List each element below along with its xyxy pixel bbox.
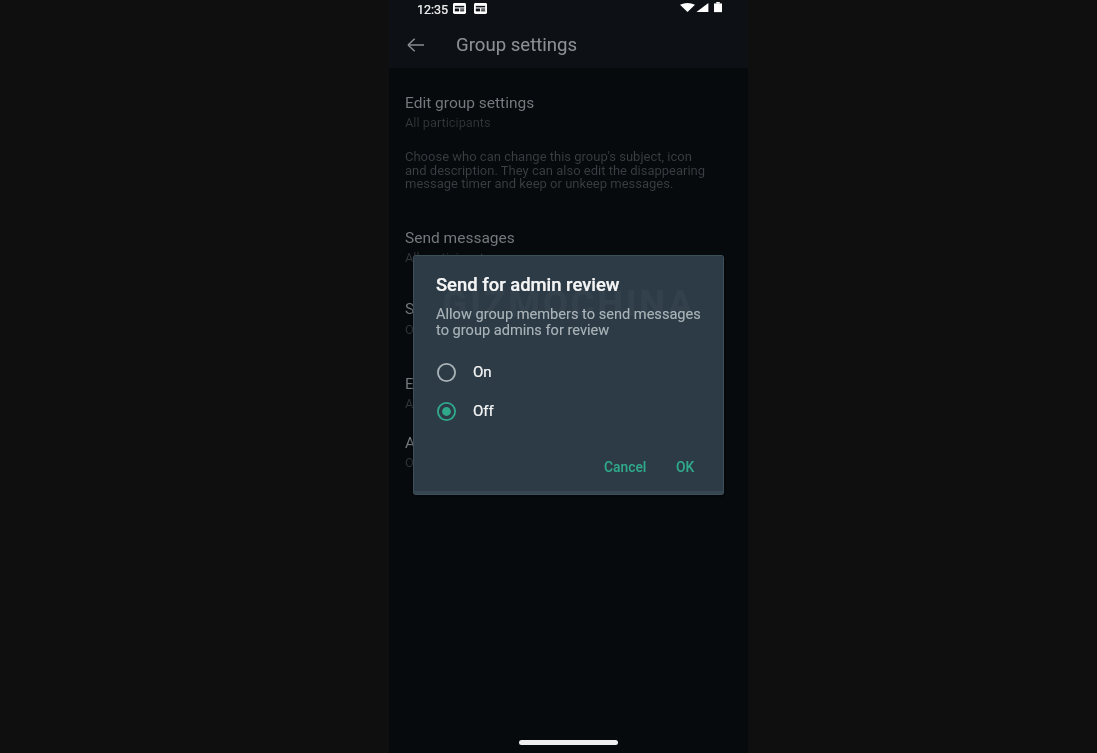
staticText: All participants <box>405 115 491 130</box>
staticText: All participants <box>405 396 491 411</box>
staticText: OK <box>676 459 695 475</box>
staticText: Send messages <box>405 229 515 247</box>
button[interactable]: Edit group settings <box>389 366 748 408</box>
staticText: Send for admin review <box>405 300 559 318</box>
button[interactable]: On <box>413 355 724 389</box>
staticText: Choose who can change this group's subje… <box>405 149 706 191</box>
staticText: Edit group settings <box>405 375 535 393</box>
button[interactable]: Send for admin review <box>389 291 748 333</box>
button[interactable]: Cancel <box>595 451 656 483</box>
staticText: Edit group settings <box>405 94 535 112</box>
staticText: Cancel <box>604 459 647 475</box>
staticText: Off <box>405 455 423 470</box>
staticText: GIZMOCHINA <box>391 283 747 325</box>
button[interactable]: OK <box>667 451 704 483</box>
staticText: Approve new participants <box>405 434 581 452</box>
staticText: Group settings <box>456 34 578 56</box>
staticText: On <box>473 363 492 381</box>
button[interactable]: Send messages <box>389 220 748 262</box>
staticText: All participants <box>405 250 491 265</box>
staticText: Off <box>473 402 494 420</box>
staticText: Send for admin review <box>436 274 620 296</box>
button[interactable]: Off <box>413 394 724 428</box>
staticText: Off <box>405 322 423 337</box>
button[interactable]: Edit group settings <box>389 85 748 127</box>
staticText: 12:35 <box>417 2 449 17</box>
button[interactable]: Approve new participants <box>389 425 748 467</box>
staticText: Allow group members to send messages to … <box>436 305 701 339</box>
button[interactable]: Back <box>393 22 439 68</box>
